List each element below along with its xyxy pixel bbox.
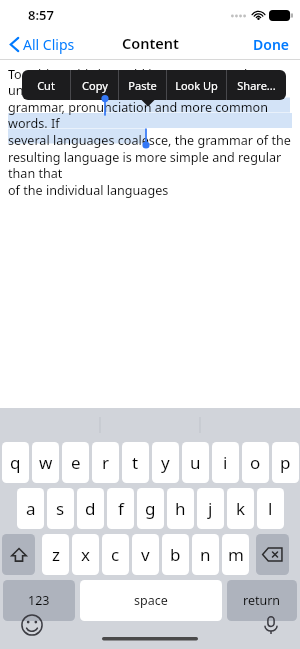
button[interactable]: r <box>92 442 119 483</box>
button[interactable]: To achieve this it would be necessary to… <box>8 66 300 199</box>
button[interactable]: Shift <box>2 534 35 575</box>
button[interactable]: Look Up <box>167 70 226 100</box>
staticText: Content <box>122 33 179 53</box>
button[interactable]: l <box>257 488 284 529</box>
button[interactable]: b <box>162 534 189 575</box>
button[interactable]: h <box>167 488 194 529</box>
staticText: several languages coalesce, the grammar … <box>8 132 291 149</box>
button[interactable]: j <box>197 488 224 529</box>
button[interactable]: return <box>227 580 297 621</box>
button[interactable]: d <box>77 488 104 529</box>
button[interactable]: z <box>42 534 69 575</box>
button[interactable]: e <box>62 442 89 483</box>
staticText: 8:57 <box>28 6 54 24</box>
button[interactable]: q <box>2 442 29 483</box>
button[interactable]: Done <box>243 28 300 60</box>
staticText: Share... <box>237 78 276 93</box>
button[interactable]: s <box>47 488 74 529</box>
button[interactable]: Cut <box>22 70 70 100</box>
button[interactable]: Paste <box>119 70 166 100</box>
button[interactable]: Dictation <box>259 613 283 637</box>
staticText: l <box>268 497 273 520</box>
staticText: h <box>175 497 186 520</box>
button[interactable]: m <box>222 534 249 575</box>
staticText: n <box>200 543 211 566</box>
staticText: p <box>280 451 291 474</box>
button[interactable]: o <box>242 442 269 483</box>
staticText: a <box>26 497 36 520</box>
button[interactable]: i <box>212 442 239 483</box>
button[interactable]: p <box>272 442 299 483</box>
button[interactable]: a <box>17 488 44 529</box>
staticText: space <box>134 592 168 609</box>
staticText: of the individual languages <box>8 182 169 199</box>
staticText: c <box>111 543 120 566</box>
button[interactable]: k <box>227 488 254 529</box>
button[interactable]: y <box>152 442 179 483</box>
staticText: t <box>132 451 139 474</box>
button[interactable]: Copy <box>71 70 118 100</box>
staticText: v <box>141 543 150 566</box>
staticText: m <box>228 543 244 566</box>
button[interactable]: Share... <box>227 70 286 100</box>
staticText: r <box>102 451 110 474</box>
staticText: b <box>170 543 181 566</box>
button[interactable]: t <box>122 442 149 483</box>
staticText: f <box>118 497 124 520</box>
staticText: i <box>223 451 228 474</box>
staticText: s <box>56 497 65 520</box>
staticText: Cut <box>37 78 55 93</box>
staticText: To achieve this it would be necessary to… <box>8 66 300 99</box>
staticText: x <box>81 543 90 566</box>
staticText: y <box>161 451 170 474</box>
staticText: q <box>10 451 21 474</box>
staticText: e <box>71 451 81 474</box>
button[interactable]: 123 <box>3 580 75 621</box>
staticText: Copy <box>82 78 108 93</box>
staticText: k <box>236 497 246 520</box>
staticText: o <box>250 451 261 474</box>
staticText: w <box>39 451 53 474</box>
button[interactable]: space <box>80 580 222 621</box>
staticText: z <box>52 543 60 566</box>
button[interactable]: v <box>132 534 159 575</box>
button[interactable]: Emoji keyboard <box>20 613 44 637</box>
staticText: Look Up <box>175 78 218 93</box>
staticText: resulting language is more simple and re… <box>8 149 300 182</box>
button[interactable]: f <box>107 488 134 529</box>
staticText: Paste <box>128 78 157 93</box>
staticText: grammar, pronunciation and more common w… <box>8 99 300 132</box>
staticText: g <box>145 497 156 520</box>
button[interactable]: c <box>102 534 129 575</box>
staticText: 123 <box>28 592 50 609</box>
button[interactable]: All Clips <box>6 28 79 60</box>
button[interactable]: w <box>32 442 59 483</box>
button[interactable]: u <box>182 442 209 483</box>
button[interactable]: n <box>192 534 219 575</box>
staticText: Done <box>253 35 290 54</box>
staticText: d <box>85 497 96 520</box>
staticText: return <box>243 592 281 609</box>
staticText: All Clips <box>23 35 75 54</box>
button[interactable]: Delete <box>256 534 289 575</box>
staticText: u <box>190 451 201 474</box>
staticText: j <box>208 497 213 520</box>
button[interactable]: x <box>72 534 99 575</box>
button[interactable]: g <box>137 488 164 529</box>
